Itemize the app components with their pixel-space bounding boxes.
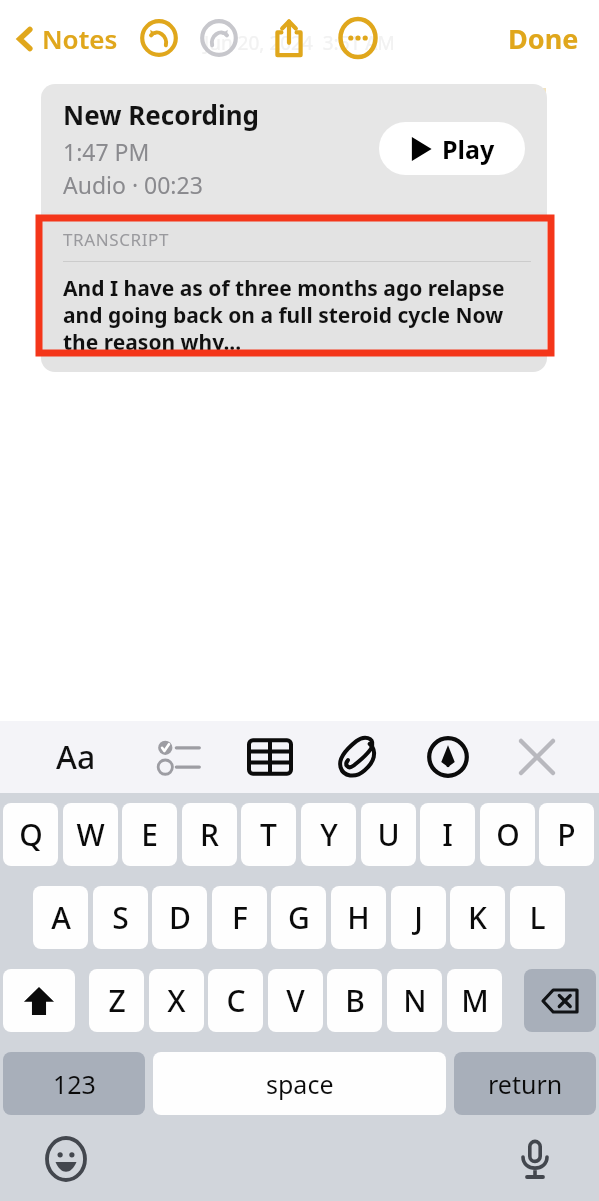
button[interactable]: J <box>391 886 446 949</box>
button[interactable]: M <box>447 969 502 1032</box>
staticText: Q <box>19 814 43 855</box>
staticText: E <box>141 814 158 855</box>
button[interactable]: P <box>539 803 594 866</box>
staticText: U <box>377 814 400 855</box>
staticText: Z <box>108 980 126 1021</box>
button[interactable]: Table <box>238 725 302 789</box>
button[interactable]: 123 <box>3 1052 145 1115</box>
staticText: A <box>51 897 71 938</box>
staticText: return <box>488 1067 563 1101</box>
button[interactable]: C <box>208 969 263 1032</box>
staticText: 123 <box>53 1067 96 1101</box>
staticText: G <box>288 897 310 938</box>
staticText: Aa <box>56 735 96 779</box>
button[interactable]: Dictate <box>507 1131 563 1187</box>
button[interactable]: Shift <box>3 969 75 1032</box>
button[interactable]: E <box>122 803 177 866</box>
staticText: S <box>112 897 129 938</box>
button[interactable]: K <box>450 886 505 949</box>
staticText: TRANSCRIPT <box>63 228 169 251</box>
staticText: T <box>260 814 277 855</box>
button[interactable]: D <box>152 886 207 949</box>
staticText: B <box>345 980 365 1021</box>
staticText: Done <box>508 20 579 57</box>
staticText: N <box>403 980 427 1021</box>
staticText: Jun 20, 2024 3:51 AM <box>204 30 395 56</box>
staticText: And I have as of three months ago relaps… <box>63 274 531 356</box>
button[interactable]: N <box>387 969 442 1032</box>
staticText: M <box>461 980 489 1021</box>
staticText: space <box>266 1067 334 1101</box>
button[interactable]: Close keyboard <box>505 725 569 789</box>
staticText: Y <box>320 814 338 855</box>
button[interactable]: More options <box>334 14 382 62</box>
button[interactable]: Checklist <box>148 725 212 789</box>
button[interactable]: Play <box>379 122 525 175</box>
button[interactable]: Markup <box>416 725 480 789</box>
button[interactable]: Y <box>301 803 356 866</box>
staticText: K <box>468 897 487 938</box>
staticText: W <box>76 814 105 855</box>
button[interactable]: S <box>93 886 148 949</box>
button[interactable]: F <box>212 886 267 949</box>
button[interactable]: G <box>271 886 326 949</box>
button[interactable]: H <box>331 886 386 949</box>
staticText: L <box>529 897 546 938</box>
staticText: Audio · 00:23 <box>63 169 203 200</box>
staticText: X <box>167 980 186 1021</box>
button[interactable]: L <box>510 886 565 949</box>
button[interactable]: Notes <box>10 15 122 62</box>
button[interactable]: Backspace <box>524 969 596 1032</box>
button[interactable]: Emoji <box>38 1131 94 1187</box>
button[interactable]: Attach <box>327 725 391 789</box>
button[interactable]: Done <box>494 12 593 65</box>
button[interactable]: U <box>361 803 416 866</box>
button[interactable]: return <box>454 1052 596 1115</box>
button[interactable]: TRANSCRIPT <box>41 212 547 372</box>
staticText: P <box>557 814 576 855</box>
staticText: V <box>286 980 305 1021</box>
button[interactable]: Q <box>3 803 58 866</box>
staticText: R <box>200 814 219 855</box>
staticText: C <box>226 980 246 1021</box>
button[interactable]: Share <box>264 13 314 63</box>
button[interactable]: space <box>153 1052 446 1115</box>
button[interactable]: Aa <box>30 727 122 787</box>
button[interactable]: New Recording <box>41 84 547 212</box>
staticText: H <box>347 897 370 938</box>
staticText: J <box>414 897 423 938</box>
button[interactable]: T <box>241 803 296 866</box>
button[interactable]: R <box>182 803 237 866</box>
button[interactable]: W <box>63 803 118 866</box>
staticText: Play <box>442 132 495 166</box>
staticText: I <box>442 814 453 855</box>
button[interactable]: V <box>268 969 323 1032</box>
staticText: F <box>232 897 248 938</box>
button[interactable]: B <box>327 969 382 1032</box>
staticText: New Recording <box>63 97 260 132</box>
staticText: D <box>169 897 191 938</box>
button[interactable]: Redo <box>196 15 242 61</box>
staticText: Notes <box>42 21 118 56</box>
button[interactable]: O <box>480 803 535 866</box>
button[interactable]: I <box>420 803 475 866</box>
button[interactable]: X <box>149 969 204 1032</box>
button[interactable]: Z <box>89 969 144 1032</box>
staticText: O <box>496 814 520 855</box>
button[interactable]: A <box>33 886 88 949</box>
staticText: 1:47 PM <box>63 136 150 167</box>
button[interactable]: Undo <box>136 15 182 61</box>
